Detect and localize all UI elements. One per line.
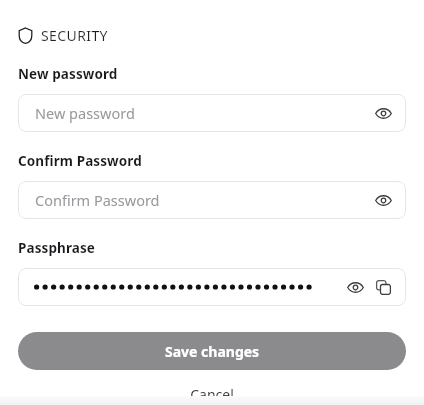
- button[interactable]: Copy passphrase: [372, 276, 394, 298]
- staticText: New password: [35, 103, 135, 123]
- button[interactable]: Show password: [18, 268, 406, 306]
- staticText: Passphrase: [18, 239, 96, 257]
- staticText: SECURITY: [41, 26, 108, 45]
- button[interactable]: Show password: [344, 276, 366, 298]
- button[interactable]: Cancel: [18, 384, 406, 405]
- staticText: Cancel: [190, 385, 234, 404]
- staticText: Confirm Password: [35, 190, 160, 210]
- button[interactable]: Confirm Password: [18, 181, 406, 219]
- staticText: New password: [18, 65, 118, 83]
- button[interactable]: New password: [18, 94, 406, 132]
- staticText: Save changes: [165, 342, 260, 361]
- button[interactable]: Show password: [372, 102, 394, 124]
- button[interactable]: Show password: [372, 189, 394, 211]
- button[interactable]: Save changes: [18, 332, 406, 370]
- staticText: Confirm Password: [18, 152, 142, 170]
- button[interactable]: SECURITY: [18, 26, 108, 45]
